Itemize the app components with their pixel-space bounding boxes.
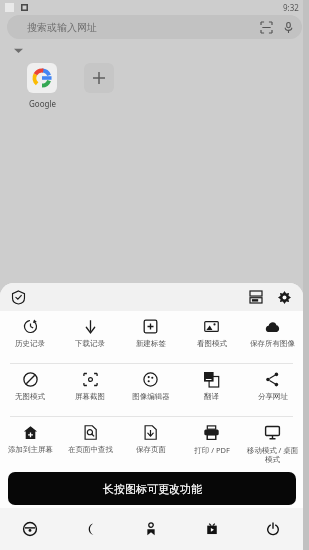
staticText: 图像编辑器 <box>132 392 170 401</box>
staticText: 下载记录 <box>75 339 105 348</box>
staticText: 打印 / PDF <box>194 445 230 455</box>
button[interactable]: 屏幕截图 <box>60 364 120 416</box>
staticText: 保存所有图像 <box>250 339 295 348</box>
button[interactable]: Action <box>0 480 60 508</box>
staticText: 翻译 <box>204 392 219 401</box>
staticText: 9:32 <box>283 2 299 13</box>
button[interactable]: Video <box>181 508 242 550</box>
button[interactable]: 分享网址 <box>242 364 303 416</box>
button[interactable]: Settings <box>272 285 296 309</box>
button[interactable]: Scan code <box>255 16 277 38</box>
staticText: 搜索或输入网址 <box>27 21 97 34</box>
button[interactable]: 搜索或输入网址 <box>7 15 302 39</box>
button[interactable]: Add shortcut <box>84 63 114 93</box>
button[interactable]: Night mode <box>60 508 120 550</box>
staticText: 添加到主屏幕 <box>8 445 53 454</box>
button[interactable]: Action <box>120 480 181 508</box>
staticText: 历史记录 <box>15 339 45 348</box>
button[interactable]: 无图模式 <box>0 364 60 416</box>
button[interactable]: 保存所有图像 <box>242 311 303 363</box>
button[interactable]: Bookmarks <box>120 508 181 550</box>
button[interactable]: Action <box>60 480 120 508</box>
button[interactable]: 看图模式 <box>181 311 242 363</box>
button[interactable]: 保存页面 <box>120 417 181 479</box>
staticText: 保存页面 <box>136 445 166 454</box>
button[interactable]: 翻译 <box>181 364 242 416</box>
button[interactable]: Google <box>14 63 70 109</box>
staticText: 无图模式 <box>15 392 45 401</box>
staticText: 看图模式 <box>197 339 227 348</box>
staticText: 在页面中查找 <box>68 445 113 454</box>
button[interactable]: Security info <box>7 286 29 308</box>
button[interactable]: Action <box>181 480 242 508</box>
button[interactable]: Expand <box>10 42 26 58</box>
staticText: 长按图标可更改功能 <box>103 482 202 496</box>
button[interactable]: 移动模式 / 桌面模式 <box>242 417 303 479</box>
button[interactable]: Action <box>242 480 303 508</box>
button[interactable]: 打印 / PDF <box>181 417 242 479</box>
staticText: 屏幕截图 <box>75 392 105 401</box>
staticText: 新建标签 <box>136 339 166 348</box>
button[interactable]: Browser <box>0 508 60 550</box>
button[interactable]: 新建标签 <box>120 311 181 363</box>
staticText: Google <box>29 98 56 109</box>
button[interactable]: Voice search <box>277 16 299 38</box>
button[interactable]: 历史记录 <box>0 311 60 363</box>
button[interactable]: Exit <box>242 508 303 550</box>
button[interactable]: Layout <box>244 285 268 309</box>
button[interactable]: 图像编辑器 <box>120 364 181 416</box>
staticText: 分享网址 <box>258 392 288 401</box>
button[interactable]: 添加到主屏幕 <box>0 417 60 479</box>
button[interactable]: 在页面中查找 <box>60 417 120 479</box>
button[interactable]: 下载记录 <box>60 311 120 363</box>
staticText: 移动模式 / 桌面模式 <box>243 445 302 464</box>
